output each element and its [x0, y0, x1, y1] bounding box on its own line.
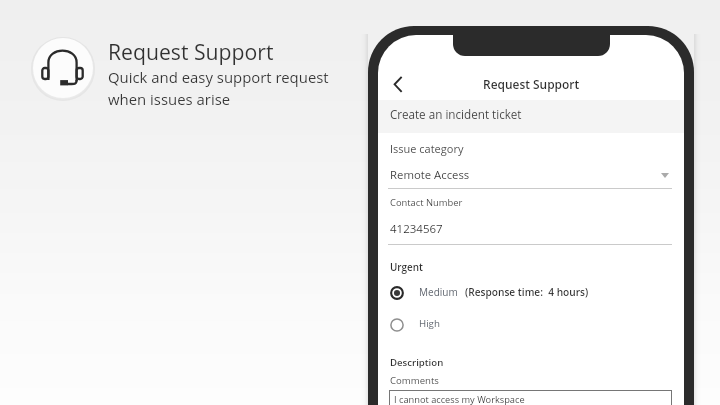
staticText: High — [419, 317, 440, 330]
staticText: Request Support — [108, 37, 274, 66]
staticText: Remote Access — [390, 167, 470, 182]
staticText: (Response time: 4 hours) — [465, 285, 589, 299]
staticText: when issues arise — [108, 89, 231, 109]
button[interactable]: Back — [382, 70, 411, 99]
staticText: Medium — [419, 285, 458, 299]
button[interactable] — [389, 390, 672, 405]
staticText: Contact Number — [390, 196, 463, 209]
button[interactable] — [387, 282, 672, 303]
staticText: 41234567 — [390, 221, 443, 237]
staticText: Create an incident ticket — [390, 106, 522, 122]
button[interactable] — [387, 314, 672, 335]
staticText: I cannot access my Workspace — [394, 393, 525, 405]
staticText: Urgent — [390, 260, 423, 273]
staticText: Description — [390, 356, 444, 369]
staticText: Quick and easy support request — [108, 67, 329, 87]
staticText: Issue category — [390, 141, 464, 156]
staticText: Request Support — [483, 76, 580, 92]
button[interactable] — [378, 100, 684, 133]
button[interactable]: Support headset — [33, 38, 93, 98]
staticText: Comments — [390, 374, 439, 387]
